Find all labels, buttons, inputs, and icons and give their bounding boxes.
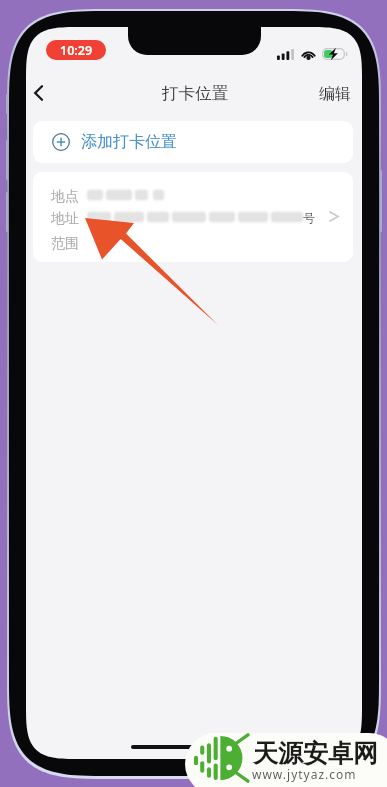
staticText: 范围 bbox=[51, 235, 79, 253]
staticText: 号 bbox=[303, 210, 315, 225]
staticText: www.jytyaz.com bbox=[252, 766, 357, 782]
button[interactable]: 编辑 bbox=[308, 78, 362, 108]
button[interactable]: 添加打卡位置 bbox=[33, 121, 353, 163]
staticText: 打卡位置 bbox=[162, 83, 228, 104]
staticText: 地点 bbox=[51, 188, 79, 206]
button[interactable]: 地点 bbox=[33, 172, 353, 262]
staticText: 天源安卓网 bbox=[253, 738, 378, 769]
staticText: 地址 bbox=[51, 210, 79, 228]
button[interactable]: 返回 bbox=[26, 78, 53, 108]
staticText: 编辑 bbox=[319, 84, 351, 102]
staticText: 10:29 bbox=[60, 42, 93, 59]
staticText: 添加打卡位置 bbox=[81, 132, 177, 152]
